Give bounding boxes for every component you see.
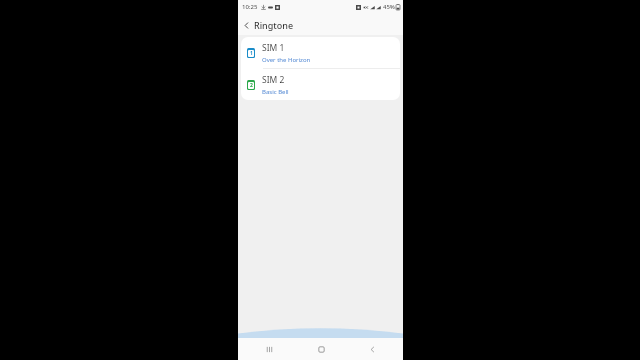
- staticText: Ringtone: [254, 19, 294, 31]
- button[interactable]: Home: [301, 338, 341, 360]
- staticText: SIM 2: [262, 74, 285, 86]
- staticText: Basic Bell: [262, 88, 289, 96]
- button[interactable]: Back: [352, 338, 392, 360]
- staticText: 45%: [383, 3, 395, 11]
- staticText: 10:25: [242, 3, 258, 11]
- staticText: SIM 1: [262, 42, 285, 54]
- button[interactable]: 2: [241, 69, 400, 100]
- staticText: Over the Horizon: [262, 56, 311, 64]
- button[interactable]: Navigate up: [238, 17, 254, 33]
- button[interactable]: 1: [241, 37, 400, 68]
- staticText: 1: [250, 50, 253, 57]
- staticText: 2: [250, 82, 253, 89]
- button[interactable]: Recent apps: [249, 338, 289, 360]
